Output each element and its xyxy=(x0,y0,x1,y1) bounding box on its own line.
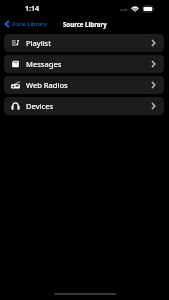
button[interactable]: Devices xyxy=(4,97,164,115)
button[interactable]: Messages xyxy=(4,55,164,73)
staticText: Web Radios xyxy=(26,80,68,90)
staticText: Playlist xyxy=(26,38,51,48)
button[interactable]: Web Radios xyxy=(4,76,164,94)
staticText: 1:14 xyxy=(25,4,39,14)
staticText: Messages xyxy=(26,59,62,69)
staticText: Zone Library xyxy=(12,20,47,28)
button[interactable]: Zone Library xyxy=(0,18,51,30)
button[interactable]: Playlist xyxy=(4,34,164,52)
staticText: Devices xyxy=(26,101,54,111)
staticText: Source Library xyxy=(63,20,107,28)
